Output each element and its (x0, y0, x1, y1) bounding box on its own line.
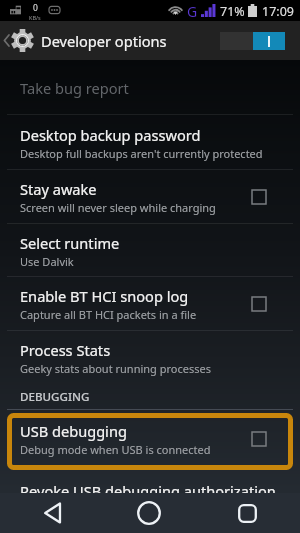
staticText: 0 (33, 2, 38, 14)
staticText: Enable BT HCI snoop log (20, 286, 189, 306)
button[interactable]: Revoke USB debugging authorization (0, 472, 300, 493)
staticText: USB debugging (20, 421, 127, 441)
staticText: Take bug report (20, 78, 129, 98)
staticText: Revoke USB debugging authorization (20, 481, 276, 493)
button[interactable]: Home (119, 493, 179, 533)
button[interactable]: Navigate up (0, 21, 34, 60)
button[interactable]: Take bug report (0, 60, 300, 115)
staticText: Desktop full backups aren't currently pr… (20, 146, 263, 161)
button[interactable]: Desktop backup password (0, 115, 300, 170)
button[interactable]: Developer options toggle (220, 32, 285, 50)
staticText: 71% (220, 3, 245, 20)
button[interactable]: Back (22, 493, 82, 533)
staticText: KB/s (29, 14, 41, 21)
staticText: Capture all BT HCI packets in a file (20, 307, 197, 322)
staticText: Select runtime (20, 233, 120, 253)
staticText: Stay awake (20, 179, 97, 199)
button[interactable]: Stay awake (0, 170, 300, 224)
button[interactable]: USB debugging (7, 413, 293, 470)
button[interactable]: Enable BT HCI snoop log (0, 277, 300, 331)
staticText: Geeky stats about running processes (20, 361, 211, 376)
staticText: Use Dalvik (20, 254, 74, 269)
button[interactable]: Recent apps (217, 493, 277, 533)
staticText: 17:09 (262, 3, 294, 20)
staticText: Debug mode when USB is connected (20, 442, 211, 457)
button[interactable]: Select runtime (0, 224, 300, 277)
staticText: Developer options (41, 31, 167, 51)
staticText: G (187, 2, 198, 21)
staticText: DEBUGGING (20, 389, 90, 405)
staticText: Process Stats (20, 340, 111, 360)
staticText: Screen will never sleep while charging (20, 200, 216, 215)
staticText: Desktop backup password (20, 125, 201, 145)
button[interactable]: Process Stats (0, 331, 300, 384)
